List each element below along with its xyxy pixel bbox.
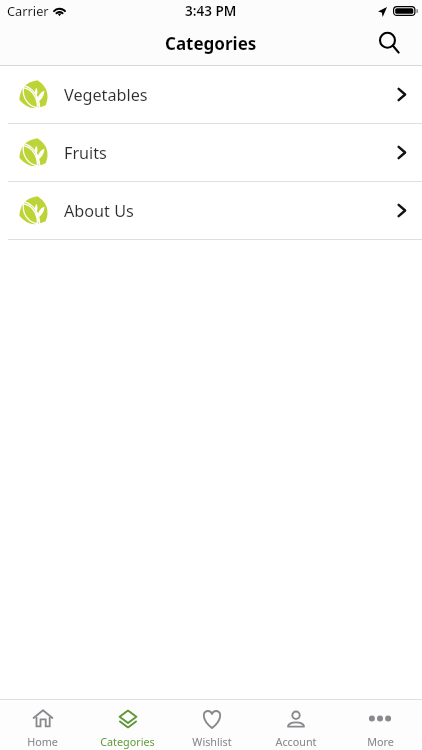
staticText: Categories — [165, 32, 257, 55]
button[interactable]: Categories — [85, 700, 170, 750]
staticText: 3:43 PM — [185, 2, 237, 20]
staticText: Vegetables — [64, 84, 148, 106]
button[interactable]: About Us — [0, 182, 422, 240]
button[interactable]: Home — [0, 700, 85, 750]
staticText: Home — [27, 734, 58, 749]
button[interactable]: Wishlist — [170, 700, 254, 750]
staticText: Account — [275, 734, 317, 749]
button[interactable]: More — [338, 700, 422, 750]
staticText: Categories — [100, 734, 155, 749]
staticText: Carrier — [7, 2, 49, 19]
button[interactable]: Vegetables — [0, 66, 422, 124]
staticText: Wishlist — [192, 734, 232, 749]
button[interactable]: Search — [373, 26, 407, 60]
button[interactable]: Fruits — [0, 124, 422, 182]
staticText: Fruits — [64, 142, 107, 164]
staticText: More — [367, 734, 394, 749]
staticText: About Us — [64, 200, 134, 222]
button[interactable]: Account — [254, 700, 338, 750]
